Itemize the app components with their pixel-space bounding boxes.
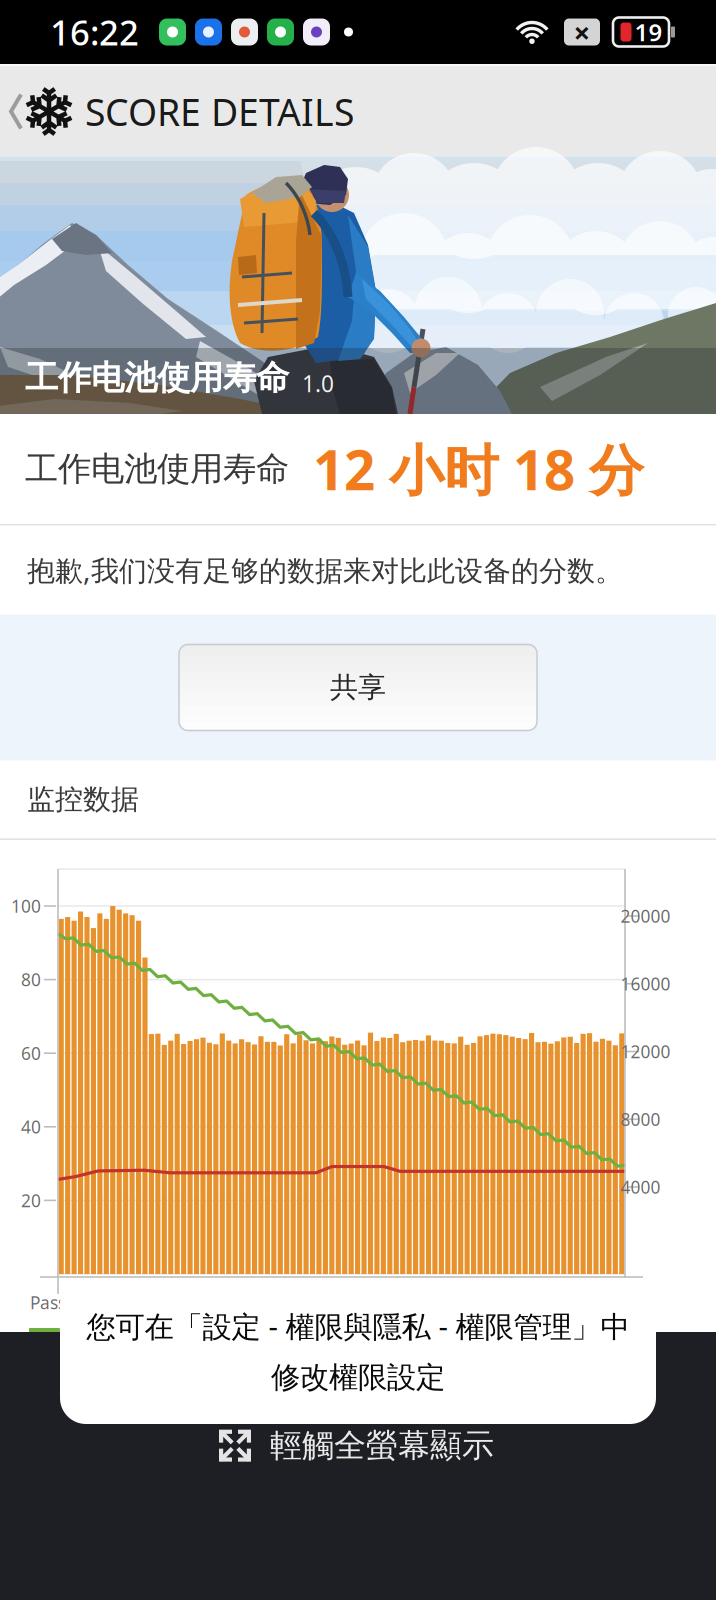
staticText: 20 bbox=[21, 1189, 41, 1212]
staticText: 4000 bbox=[620, 1175, 660, 1198]
staticText: 16000 bbox=[620, 972, 670, 995]
staticText: 监控数据 bbox=[27, 782, 139, 817]
staticText: 工作电池使用寿命 bbox=[25, 357, 289, 398]
button[interactable]: Back bbox=[0, 66, 75, 157]
staticText: 共享 bbox=[330, 670, 386, 705]
staticText: 16:22 bbox=[50, 9, 139, 55]
button[interactable]: 共享 bbox=[179, 644, 537, 730]
staticText: 修改權限設定 bbox=[271, 1359, 445, 1395]
staticText: 您可在「設定 - 權限與隱私 - 權限管理」中 bbox=[86, 1306, 629, 1345]
staticText: 12000 bbox=[620, 1040, 670, 1063]
button[interactable]: Tap for full screen bbox=[208, 1418, 504, 1473]
staticText: 抱歉,我们没有足够的数据来对比此设备的分数。 bbox=[27, 551, 623, 589]
staticText: 輕觸全螢幕顯示 bbox=[270, 1426, 494, 1465]
staticText: SCORE DETAILS bbox=[85, 87, 354, 136]
staticText: 100 bbox=[11, 894, 41, 917]
staticText: 1.0 bbox=[302, 368, 334, 398]
staticText: 19 bbox=[634, 16, 662, 48]
staticText: 20000 bbox=[620, 904, 670, 927]
staticText: Pass bbox=[30, 1291, 66, 1314]
staticText: 40 bbox=[21, 1115, 41, 1138]
staticText: 12 小时 18 分 bbox=[313, 433, 644, 505]
staticText: 80 bbox=[21, 968, 41, 991]
staticText: 8000 bbox=[620, 1108, 660, 1131]
staticText: × bbox=[573, 12, 590, 51]
staticText: 60 bbox=[21, 1042, 41, 1065]
staticText: 工作电池使用寿命 bbox=[25, 448, 289, 489]
